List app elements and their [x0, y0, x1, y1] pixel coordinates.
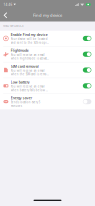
staticText: FIND MY DEVICE — [3, 24, 23, 28]
button[interactable]: Enable Find my device — [0, 31, 95, 46]
staticText: You will receive an email when Flightmod… — [11, 53, 48, 60]
button[interactable]: SIM card removal — [0, 62, 95, 78]
staticText: Sends location every 5 minutes — [11, 100, 41, 108]
staticText: Find my device — [33, 12, 62, 18]
staticText: You will receive an email when the SIM c… — [11, 69, 48, 76]
button[interactable]: Energy saver — [0, 94, 95, 109]
button[interactable]: Low battery — [0, 78, 95, 94]
staticText: Enable Find my device — [11, 32, 48, 37]
staticText: 14:46 — [4, 2, 13, 6]
button[interactable]: Back — [0, 9, 11, 21]
button[interactable]: Flightmode — [0, 46, 95, 62]
staticText: Energy saver — [11, 95, 32, 100]
staticText: Your device will be located and sent to … — [11, 37, 48, 45]
staticText: Low battery — [11, 80, 30, 84]
staticText: You will receive an email when battery f… — [11, 85, 48, 92]
staticText: SIM card removal — [11, 64, 39, 69]
staticText: Flightmode — [11, 48, 29, 53]
